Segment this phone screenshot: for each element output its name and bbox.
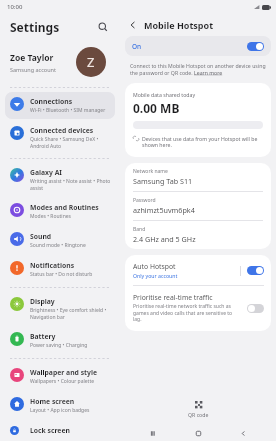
staticText: Only your account [133,272,178,279]
button[interactable]: Notifications [5,256,115,283]
button[interactable]: Home screen [5,392,115,419]
staticText: Galaxy AI [30,168,63,177]
button[interactable]: Home [186,425,210,441]
staticText: Connections [30,97,73,106]
staticText: Modes and Routines [30,203,99,212]
button[interactable]: Auto Hotspot [125,255,271,285]
staticText: Power saving • Charging [30,342,88,349]
button[interactable]: Back [231,425,255,441]
staticText: Password [133,197,156,204]
button[interactable]: Recents [141,425,165,441]
button[interactable]: Sound [5,227,115,254]
button[interactable]: Display [5,292,115,325]
staticText: Zoe Taylor [10,52,54,64]
staticText: 0.00 MB [133,100,180,116]
staticText: Notifications [30,261,75,270]
button[interactable]: Prioritise real-time traffic [125,286,271,331]
button[interactable]: Connections [5,92,115,119]
staticText: Sound [30,232,52,241]
staticText: Mobile data shared today [133,91,196,98]
button[interactable]: Wallpaper and style [5,363,115,390]
staticText: Connect to this Mobile Hotspot on anothe… [130,62,266,69]
staticText: Auto Hotspot [133,262,176,271]
button[interactable]: Zoe Taylor [0,40,120,84]
button[interactable]: QR code [182,399,215,420]
button[interactable]: Connected devices [5,121,115,154]
button[interactable]: Galaxy AI [5,163,115,196]
staticText: Samsung account [10,66,56,73]
staticText: Prioritise real-time traffic [133,293,213,302]
button[interactable]: On [125,36,271,56]
staticText: Samsung Tab S11 [133,176,193,186]
staticText: Display [30,297,55,306]
button[interactable]: Search [94,18,112,36]
button[interactable]: Modes and Routines [5,198,115,225]
staticText: Settings [10,19,60,35]
button[interactable]: Password [125,192,271,220]
staticText: 10:00 [7,3,23,11]
staticText: On [132,42,142,51]
staticText: Brightness • Eye comfort shield • Naviga… [30,307,111,320]
staticText: Writing assist • Note assist • Photo ass… [30,178,111,191]
button[interactable]: Lock screen [5,421,115,440]
button[interactable]: Band [125,221,271,249]
staticText: Modes • Routines [30,213,71,220]
staticText: Wi-Fi • Bluetooth • SIM manager [30,107,106,114]
staticText: Status bar • Do not disturb [30,271,93,278]
staticText: 2.4 GHz and 5 GHz [133,234,196,244]
staticText: Connected devices [30,126,94,135]
button[interactable]: Learn more [194,69,223,76]
staticText: Lock screen [30,426,70,435]
button[interactable]: Toggle on [247,42,264,51]
staticText: Battery [30,332,56,341]
staticText: Layout • App icon badges [30,407,90,414]
staticText: Z [87,53,95,71]
staticText: Prioritise real-time network traffic suc… [133,303,241,323]
button[interactable]: Battery [5,327,115,354]
staticText: Quick Share • Samsung DeX • Android Auto [30,136,111,149]
staticText: Wallpaper and style [30,368,97,377]
button[interactable]: Network name [125,163,271,191]
staticText: azhimzt5uvm6pk4 [133,205,195,215]
button[interactable]: Back [125,17,141,33]
staticText: QR code [188,411,209,418]
button[interactable]: Toggle off [247,304,264,313]
staticText: the password or QR code. [130,69,194,76]
staticText: Devices that use data from your Hotspot … [142,135,263,149]
staticText: Sound mode • Ringtone [30,242,86,249]
staticText: Network name [133,168,168,175]
staticText: Mobile Hotspot [144,19,214,31]
staticText: Home screen [30,397,75,406]
button[interactable]: Toggle on [247,266,264,275]
staticText: Band [133,226,146,233]
staticText: Wallpapers • Colour palette [30,378,95,385]
